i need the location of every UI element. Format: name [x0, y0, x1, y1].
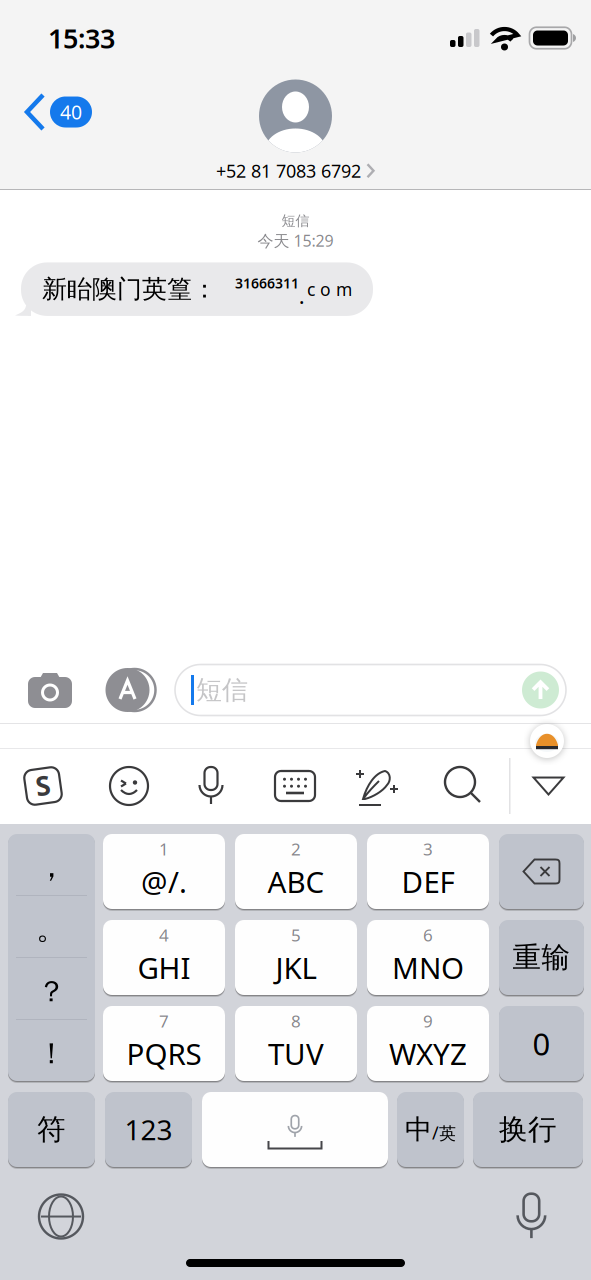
button[interactable]	[28, 672, 72, 708]
button[interactable]: 短信	[175, 664, 566, 715]
staticText: 40	[60, 99, 82, 125]
button[interactable]: 8	[235, 1006, 357, 1081]
button[interactable]: 9	[367, 1006, 489, 1081]
staticText: 重输	[512, 939, 570, 975]
staticText: 。	[36, 909, 67, 948]
staticText: GHI	[137, 947, 190, 988]
button[interactable]	[528, 775, 568, 796]
staticText: 2	[291, 837, 301, 860]
staticText: DEF	[401, 861, 454, 902]
button[interactable]	[202, 1092, 388, 1167]
button[interactable]	[499, 834, 584, 909]
staticText: ？	[37, 973, 66, 1010]
button[interactable]	[529, 723, 565, 759]
staticText: 15:33	[48, 20, 115, 56]
staticText: 今天 15:29	[257, 230, 333, 251]
button[interactable]: 2	[235, 834, 357, 909]
staticText: 短信	[281, 212, 309, 230]
staticText: 3	[423, 837, 433, 860]
staticText: 符	[37, 1111, 66, 1147]
button[interactable]: 40	[24, 92, 92, 132]
staticText: 1	[159, 837, 169, 860]
staticText: 7	[159, 1009, 169, 1032]
button[interactable]: S	[23, 765, 63, 807]
staticText: 5	[291, 923, 301, 946]
staticText: c o m	[307, 277, 352, 301]
staticText: 新眙隩门英篁：	[42, 273, 217, 305]
staticText: 8	[291, 1009, 301, 1032]
staticText: +52 81 7083 6792	[216, 158, 361, 183]
button[interactable]	[102, 668, 153, 712]
button[interactable]: 0	[499, 1006, 584, 1081]
button[interactable]: +52 81 7083 6792	[216, 79, 375, 183]
staticText: 短信	[196, 674, 248, 706]
staticText: ！	[37, 1035, 66, 1072]
staticText: JKL	[275, 947, 316, 988]
button[interactable]: 3	[367, 834, 489, 909]
button[interactable]: 换行	[473, 1092, 583, 1167]
button[interactable]	[191, 766, 231, 806]
button[interactable]: 6	[367, 920, 489, 995]
staticText: 中	[405, 1112, 432, 1146]
button[interactable]	[444, 766, 484, 806]
button[interactable]: 7	[103, 1006, 225, 1081]
button[interactable]: ，	[8, 834, 95, 1081]
staticText: 0	[532, 1022, 550, 1065]
staticText: 英	[439, 1123, 456, 1144]
staticText: ，	[36, 847, 67, 886]
button[interactable]	[109, 766, 149, 806]
staticText: PQRS	[126, 1033, 201, 1074]
staticText: WXYZ	[389, 1033, 467, 1074]
staticText: 123	[124, 1110, 172, 1148]
button[interactable]	[522, 671, 559, 708]
button[interactable]	[275, 770, 315, 802]
button[interactable]	[355, 765, 399, 807]
button[interactable]	[516, 1192, 547, 1240]
staticText: @/.	[141, 861, 187, 902]
staticText: 9	[423, 1009, 433, 1032]
button[interactable]: 符	[8, 1092, 95, 1167]
button[interactable]	[38, 1193, 84, 1239]
staticText: 4	[159, 923, 169, 946]
staticText: 6	[423, 923, 433, 946]
staticText: MNO	[392, 947, 464, 988]
button[interactable]: 1	[103, 834, 225, 909]
staticText: 换行	[499, 1111, 557, 1147]
staticText: ABC	[267, 861, 324, 902]
button[interactable]: 5	[235, 920, 357, 995]
staticText: .	[299, 283, 304, 310]
button[interactable]: 123	[105, 1092, 192, 1167]
button[interactable]: 中	[397, 1092, 464, 1167]
button[interactable]: 4	[103, 920, 225, 995]
staticText: /	[432, 1120, 439, 1145]
staticText: TUV	[268, 1033, 324, 1074]
button[interactable]: 重输	[499, 920, 584, 995]
staticText: 31666311	[235, 274, 299, 293]
staticText: S	[35, 767, 50, 803]
